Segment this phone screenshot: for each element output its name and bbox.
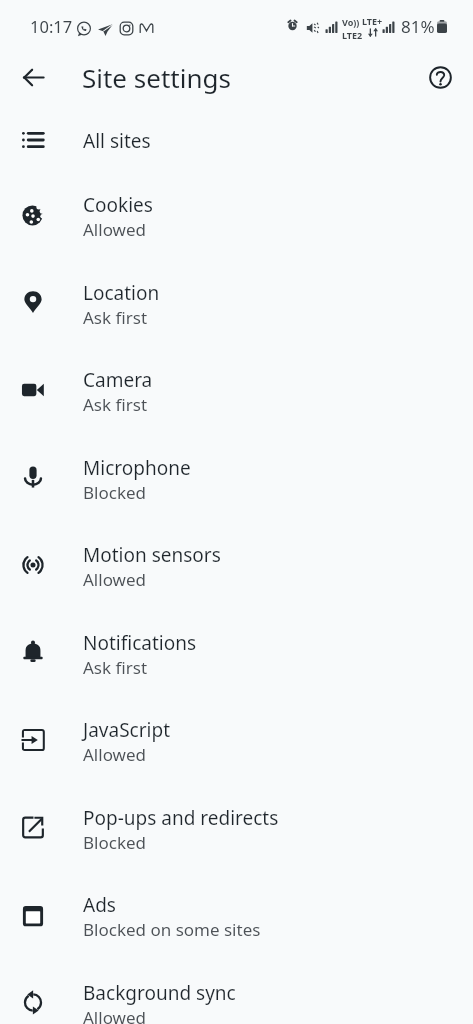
staticText: Background sync (83, 980, 236, 1006)
staticText: Cookies (83, 192, 153, 218)
staticText: Ask first (83, 306, 148, 329)
staticText: Blocked (83, 481, 147, 504)
staticText: Ads (83, 892, 116, 918)
staticText: Blocked on some sites (83, 918, 261, 941)
button[interactable]: Pop-ups and redirects (0, 782, 473, 869)
staticText: JavaScript (83, 717, 171, 743)
button[interactable]: Navigate up (11, 55, 55, 99)
button[interactable]: JavaScript (0, 694, 473, 782)
button[interactable]: Notifications (0, 607, 473, 694)
staticText: Blocked (83, 831, 147, 854)
button[interactable]: Background sync (0, 957, 473, 1024)
staticText: Allowed (83, 743, 146, 766)
staticText: Location (83, 280, 160, 306)
button[interactable]: Cookies (0, 169, 473, 257)
staticText: Ask first (83, 393, 148, 416)
button[interactable]: Camera (0, 344, 473, 432)
staticText: LTE2 (342, 29, 363, 41)
staticText: Pop-ups and redirects (83, 805, 279, 831)
button[interactable]: Help & feedback (418, 55, 462, 99)
staticText: Allowed (83, 1006, 146, 1024)
staticText: Microphone (83, 455, 191, 481)
staticText: Site settings (82, 60, 231, 95)
staticText: Motion sensors (83, 542, 221, 568)
button[interactable]: Motion sensors (0, 519, 473, 607)
staticText: LTE+ (362, 15, 383, 27)
staticText: All sites (83, 128, 151, 154)
staticText: Ask first (83, 656, 148, 679)
staticText: 81% (401, 15, 435, 38)
staticText: Vo)) (342, 16, 360, 28)
button[interactable]: Location (0, 257, 473, 344)
staticText: Camera (83, 367, 153, 393)
button[interactable]: Ads (0, 869, 473, 957)
button[interactable]: Microphone (0, 432, 473, 519)
staticText: Allowed (83, 568, 146, 591)
button[interactable]: All sites (0, 108, 473, 169)
staticText: Notifications (83, 630, 197, 656)
staticText: Allowed (83, 218, 146, 241)
staticText: 10:17 (30, 15, 73, 37)
